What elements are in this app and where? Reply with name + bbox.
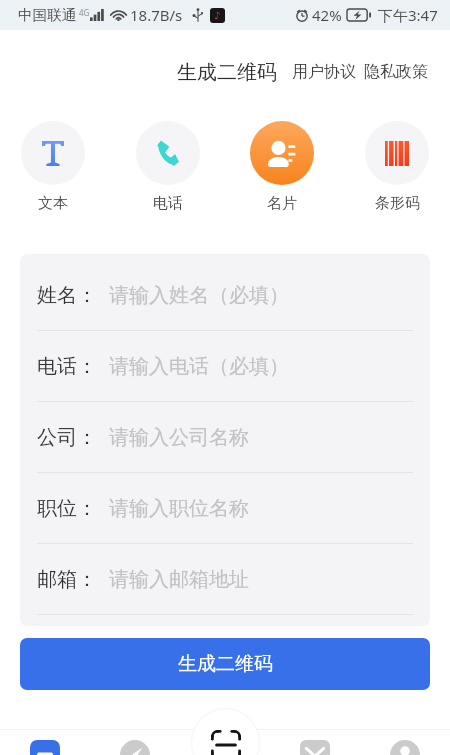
button[interactable]: 用户协议 <box>292 56 356 88</box>
staticText: 职位： <box>37 496 97 521</box>
button[interactable]: 生成二维码 <box>20 638 430 690</box>
staticText: 电话 <box>153 194 183 213</box>
button[interactable]: Scan <box>190 707 261 733</box>
staticText: 生成二维码 <box>177 60 277 85</box>
staticText: 生成二维码 <box>178 652 273 676</box>
staticText: 电话： <box>37 354 97 379</box>
staticText: 隐私政策 <box>364 62 428 82</box>
staticText: 名片 <box>267 194 297 213</box>
staticText: 用户协议 <box>292 62 356 82</box>
button[interactable]: 姓名： <box>20 260 430 331</box>
button[interactable]: Messages <box>270 729 360 755</box>
staticText: 请输入电话（必填） <box>109 354 289 379</box>
staticText: 邮箱： <box>37 567 97 592</box>
staticText: 请输入职位名称 <box>109 496 249 521</box>
staticText: 中国联通 <box>18 6 77 24</box>
staticText: 42% <box>312 5 342 25</box>
button[interactable]: Profile <box>360 729 450 755</box>
staticText: ♪ <box>214 10 221 22</box>
staticText: 姓名： <box>37 283 97 308</box>
button[interactable]: 隐私政策 <box>364 56 428 88</box>
button[interactable]: Generate <box>0 729 90 755</box>
staticText: 条形码 <box>375 194 420 213</box>
button[interactable]: Discover <box>90 729 180 755</box>
staticText: 公司： <box>37 425 97 450</box>
staticText: 请输入公司名称 <box>109 425 249 450</box>
button[interactable]: 邮箱： <box>20 544 430 615</box>
button[interactable]: 文本 <box>21 121 85 213</box>
button[interactable]: 名片 <box>250 121 314 213</box>
button[interactable]: 电话： <box>20 331 430 402</box>
staticText: 请输入邮箱地址 <box>109 567 249 592</box>
button[interactable]: 电话 <box>136 121 200 213</box>
staticText: 请输入姓名（必填） <box>109 283 289 308</box>
staticText: 下午3:47 <box>378 5 438 25</box>
button[interactable]: 公司： <box>20 402 430 473</box>
button[interactable]: 职位： <box>20 473 430 544</box>
staticText: 文本 <box>38 194 68 213</box>
button[interactable]: 条形码 <box>365 121 429 213</box>
staticText: 18.7B/s <box>130 5 183 25</box>
staticText: 4G <box>79 7 90 18</box>
